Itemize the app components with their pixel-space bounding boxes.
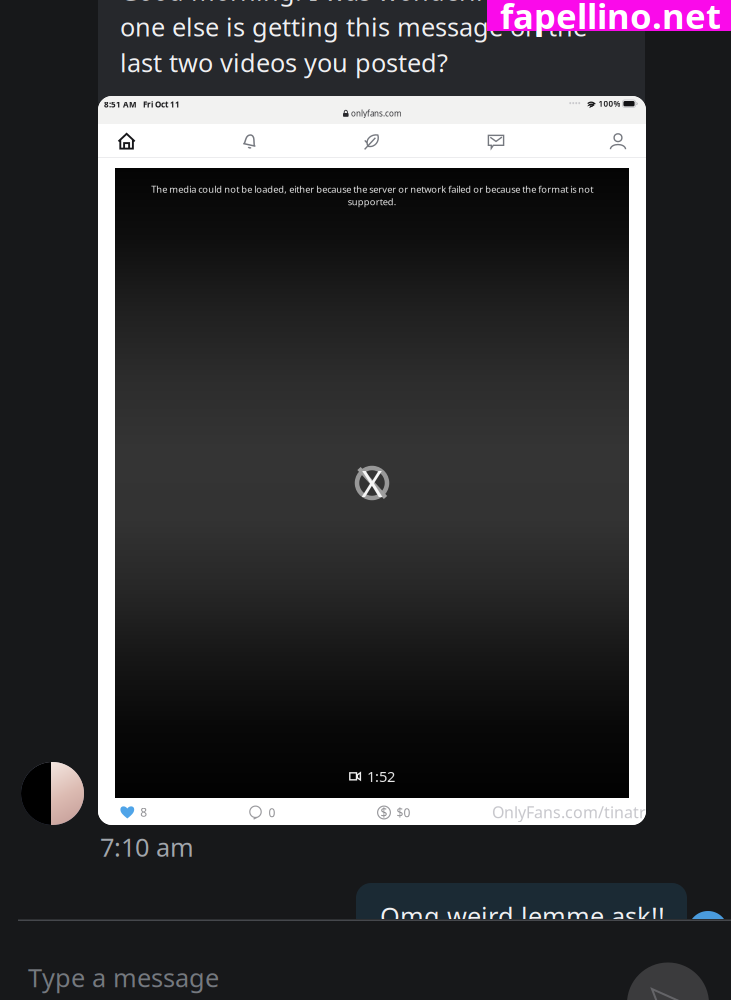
staticText: Type a message (28, 960, 219, 994)
staticText: 7:10 am (100, 830, 194, 864)
staticText: •••• (569, 99, 581, 108)
staticText: Omg weird lemme ask!! (380, 899, 665, 933)
staticText: X (361, 459, 382, 507)
staticText: 1:52 (367, 766, 395, 786)
staticText: Fri Oct 11 (137, 99, 180, 110)
staticText: onlyfans.com (351, 108, 401, 119)
staticText: 8 (140, 804, 147, 820)
staticText: $ (380, 804, 387, 820)
staticText: Good morning! I was wondering if any one… (120, 0, 587, 79)
button[interactable]: Home (104, 124, 150, 158)
staticText: OnlyFans.com/tinatrl (492, 801, 650, 823)
button[interactable]: 8 (120, 799, 240, 825)
button[interactable]: 0 (249, 799, 359, 825)
staticText: fapellino.net (500, 0, 721, 38)
staticText: 100% (596, 98, 622, 109)
staticText: 0 (268, 804, 275, 820)
button[interactable]: Profile (595, 124, 641, 158)
button[interactable]: Collections (349, 124, 395, 158)
staticText: The media could not be loaded, either be… (151, 183, 593, 208)
button[interactable]: Notifications (227, 124, 273, 158)
staticText: 8:51 AM (104, 99, 137, 110)
button[interactable]: Messages (473, 124, 519, 158)
staticText: $0 (396, 804, 410, 820)
button[interactable]: $ (377, 799, 487, 825)
